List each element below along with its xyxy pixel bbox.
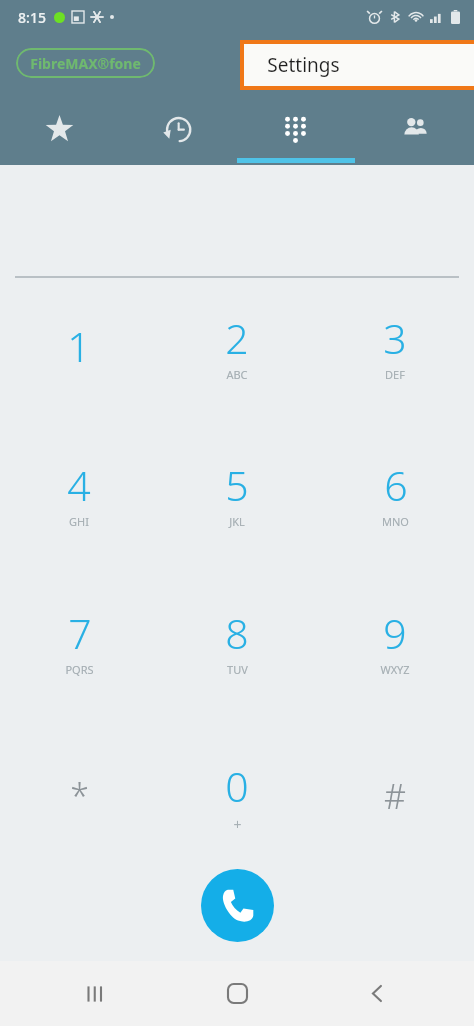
staticText: 8:15 bbox=[18, 8, 46, 27]
staticText: 3 bbox=[383, 310, 407, 366]
button[interactable]: # bbox=[325, 750, 465, 842]
staticText: ABC bbox=[226, 367, 248, 382]
button[interactable]: 4 bbox=[9, 447, 149, 539]
staticText: 4 bbox=[67, 457, 91, 513]
button[interactable]: 1 bbox=[9, 300, 149, 392]
button[interactable]: 6 bbox=[325, 447, 465, 539]
staticText: DEF bbox=[385, 367, 405, 382]
staticText: JKL bbox=[229, 514, 245, 529]
staticText: # bbox=[384, 773, 406, 819]
button[interactable]: 3 bbox=[325, 300, 465, 392]
button[interactable]: 7 bbox=[9, 595, 149, 687]
button[interactable]: Keypad bbox=[236, 100, 355, 165]
button[interactable]: 9 bbox=[325, 595, 465, 687]
button[interactable]: FibreMAX®fone bbox=[30, 48, 141, 78]
staticText: * bbox=[70, 773, 89, 819]
staticText: Settings bbox=[267, 52, 340, 78]
staticText: TUV bbox=[227, 662, 248, 677]
staticText: PQRS bbox=[65, 662, 94, 677]
button[interactable]: Favorites bbox=[0, 100, 118, 165]
button[interactable]: 8 bbox=[167, 595, 307, 687]
button[interactable]: 0 bbox=[167, 750, 307, 842]
button[interactable]: Recents bbox=[118, 100, 236, 165]
button[interactable]: Call bbox=[201, 869, 274, 942]
staticText: 5 bbox=[225, 457, 249, 513]
staticText: MNO bbox=[382, 514, 409, 529]
staticText: 9 bbox=[383, 605, 407, 661]
staticText: 6 bbox=[384, 457, 408, 513]
staticText: 7 bbox=[68, 605, 92, 661]
staticText: FibreMAX®fone bbox=[30, 54, 141, 73]
button[interactable]: Recent apps bbox=[54, 961, 140, 1026]
button[interactable]: Back bbox=[334, 961, 420, 1026]
button[interactable]: * bbox=[9, 750, 149, 842]
staticText: WXYZ bbox=[380, 662, 410, 677]
button[interactable]: Settings bbox=[244, 44, 474, 86]
button[interactable]: Home bbox=[194, 961, 280, 1026]
staticText: 1 bbox=[67, 318, 91, 374]
staticText: 2 bbox=[225, 310, 249, 366]
staticText: 0 bbox=[225, 758, 249, 814]
staticText: 8 bbox=[225, 605, 249, 661]
staticText: + bbox=[233, 815, 242, 834]
button[interactable]: 5 bbox=[167, 447, 307, 539]
button[interactable]: Contacts bbox=[355, 100, 474, 165]
button[interactable]: 2 bbox=[167, 300, 307, 392]
staticText: GHI bbox=[69, 514, 89, 529]
